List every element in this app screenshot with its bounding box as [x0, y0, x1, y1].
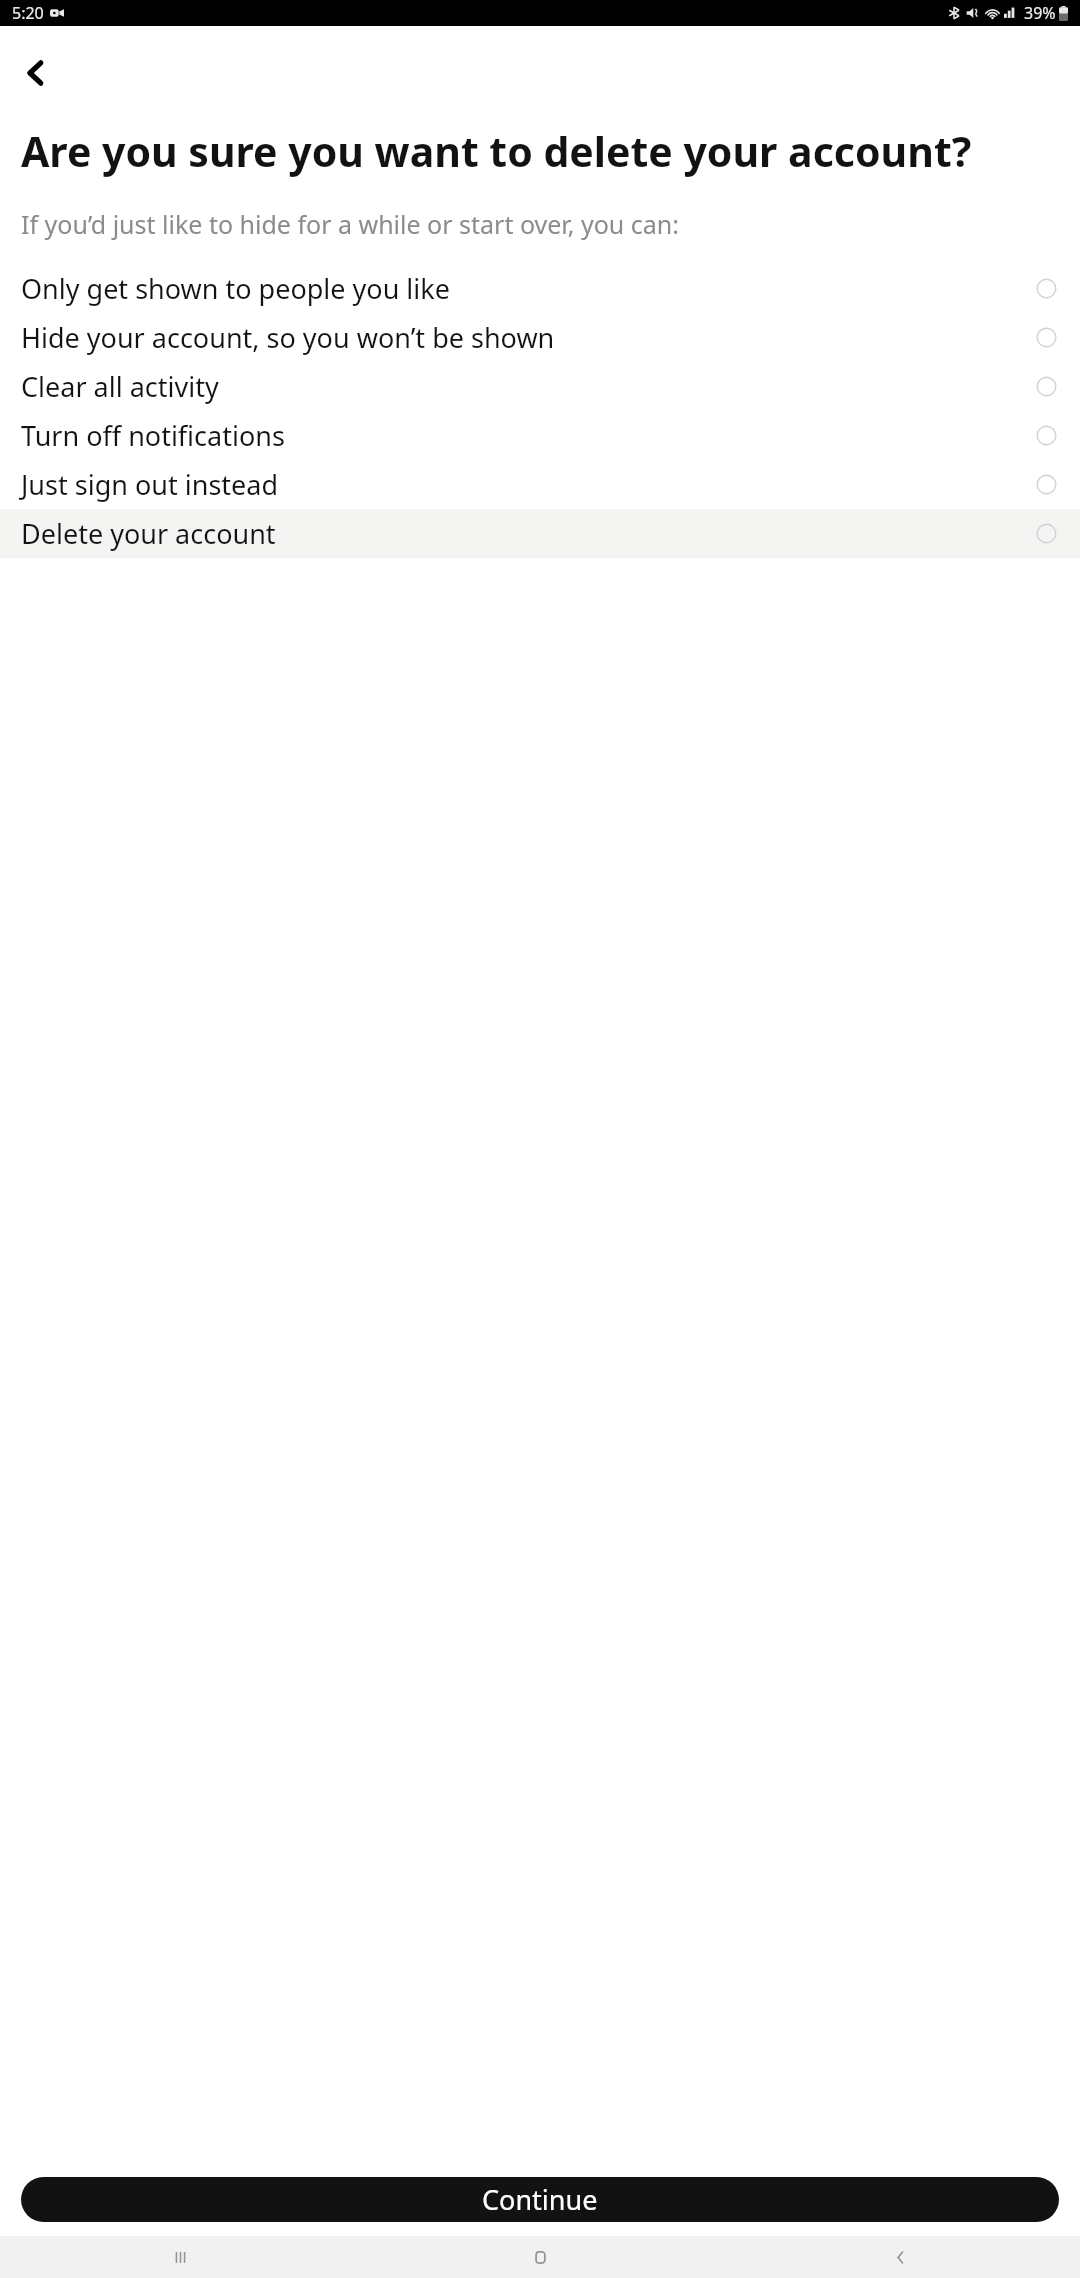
staticText: Are you sure you want to delete your acc… — [21, 123, 972, 179]
staticText: If you’d just like to hide for a while o… — [21, 207, 679, 241]
button[interactable]: Back — [8, 45, 64, 101]
button[interactable]: Back — [720, 2236, 1080, 2278]
staticText: 5:20 — [12, 2, 44, 24]
button[interactable]: Turn off notifications — [0, 411, 1080, 460]
staticText: Just sign out instead — [21, 466, 1036, 503]
staticText: Clear all activity — [21, 368, 1036, 405]
button[interactable]: Hide your account, so you won’t be shown — [0, 313, 1080, 362]
staticText: Continue — [482, 2181, 598, 2218]
staticText: Turn off notifications — [21, 417, 1036, 454]
staticText: Delete your account — [21, 515, 1036, 552]
button[interactable]: Home — [360, 2236, 720, 2278]
button[interactable]: Only get shown to people you like — [0, 264, 1080, 313]
button[interactable]: Clear all activity — [0, 362, 1080, 411]
button[interactable]: Continue — [21, 2177, 1059, 2222]
staticText: Hide your account, so you won’t be shown — [21, 319, 1036, 356]
button[interactable]: Delete your account — [0, 509, 1080, 558]
staticText: 39% — [1024, 2, 1056, 24]
button[interactable]: Just sign out instead — [0, 460, 1080, 509]
button[interactable]: Recents — [0, 2236, 360, 2278]
staticText: Only get shown to people you like — [21, 270, 1036, 307]
